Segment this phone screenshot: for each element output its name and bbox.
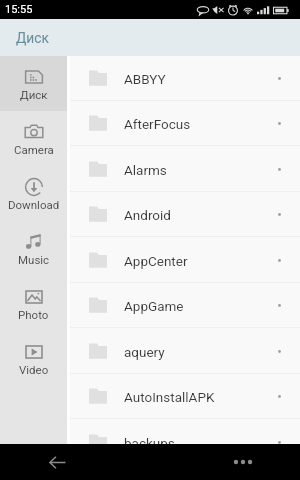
staticText: Android (124, 207, 171, 223)
button[interactable]: Back (40, 445, 74, 479)
button[interactable]: Video (0, 331, 67, 386)
staticText: Music (18, 253, 50, 266)
staticText: Диск (16, 30, 50, 46)
button[interactable]: Alarms (67, 147, 300, 192)
staticText: backups (124, 435, 175, 451)
staticText: ABBYY (124, 71, 166, 87)
staticText: Download (8, 198, 60, 211)
button[interactable]: backups (67, 420, 300, 465)
button[interactable]: AppCenter (67, 238, 300, 283)
staticText: Photo (18, 308, 49, 321)
button[interactable]: Download (0, 166, 67, 221)
staticText: aquery (124, 344, 165, 360)
button[interactable]: Android (67, 192, 300, 237)
staticText: AutoInstallAPK (124, 389, 215, 405)
staticText: AfterFocus (124, 116, 191, 132)
button[interactable]: Music (0, 221, 67, 276)
button[interactable]: Photo (0, 276, 67, 331)
staticText: AppCenter (124, 253, 188, 269)
staticText: Диск (20, 88, 48, 101)
button[interactable]: More options (226, 445, 260, 479)
staticText: AppGame (124, 298, 184, 314)
button[interactable]: AppGame (67, 283, 300, 328)
staticText: Camera (14, 143, 54, 156)
button[interactable]: Camera (0, 111, 67, 166)
button[interactable]: AfterFocus (67, 101, 300, 146)
staticText: Video (19, 363, 49, 376)
button[interactable]: aquery (67, 329, 300, 374)
staticText: 15:55 (5, 3, 33, 16)
button[interactable]: Диск (0, 56, 67, 111)
button[interactable]: AutoInstallAPK (67, 374, 300, 419)
button[interactable]: ABBYY (67, 56, 300, 101)
staticText: Alarms (124, 162, 167, 178)
